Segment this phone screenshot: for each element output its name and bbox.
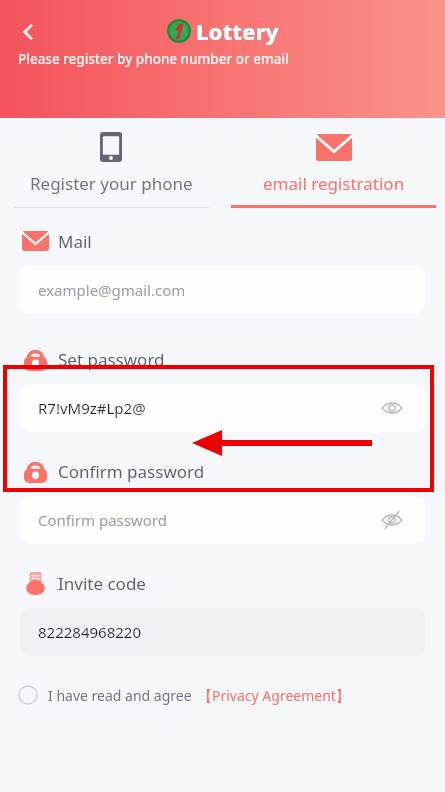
button[interactable]: Back	[6, 10, 50, 54]
staticText: Invite code	[58, 572, 146, 595]
button[interactable]: 822284968220	[20, 608, 425, 656]
staticText: Mail	[58, 230, 92, 253]
staticText: Confirm password	[38, 510, 167, 530]
button[interactable]: Confirm password	[20, 496, 425, 544]
staticText: Register your phone	[30, 172, 193, 195]
staticText: 822284968220	[38, 622, 141, 642]
button[interactable]: example@gmail.com	[20, 266, 425, 314]
staticText: example@gmail.com	[38, 280, 186, 300]
staticText: Confirm password	[58, 460, 205, 483]
staticText: R7!vM9z#Lp2@	[38, 398, 146, 418]
button[interactable]: R7!vM9z#Lp2@	[20, 384, 425, 432]
staticText: I have read and agree	[48, 686, 192, 705]
button[interactable]: I have read and agree	[18, 678, 445, 712]
button[interactable]: email registration	[222, 118, 445, 208]
staticText: Set password	[58, 348, 165, 371]
button[interactable]: Toggle password visibility	[377, 393, 407, 423]
button[interactable]: Toggle password visibility	[377, 505, 407, 535]
staticText: Please register by phone number or email	[18, 50, 289, 68]
button[interactable]: Register your phone	[0, 118, 222, 208]
staticText: Lottery	[196, 16, 279, 46]
staticText: email registration	[263, 172, 405, 195]
staticText: 【Privacy Agreement】	[198, 686, 350, 705]
